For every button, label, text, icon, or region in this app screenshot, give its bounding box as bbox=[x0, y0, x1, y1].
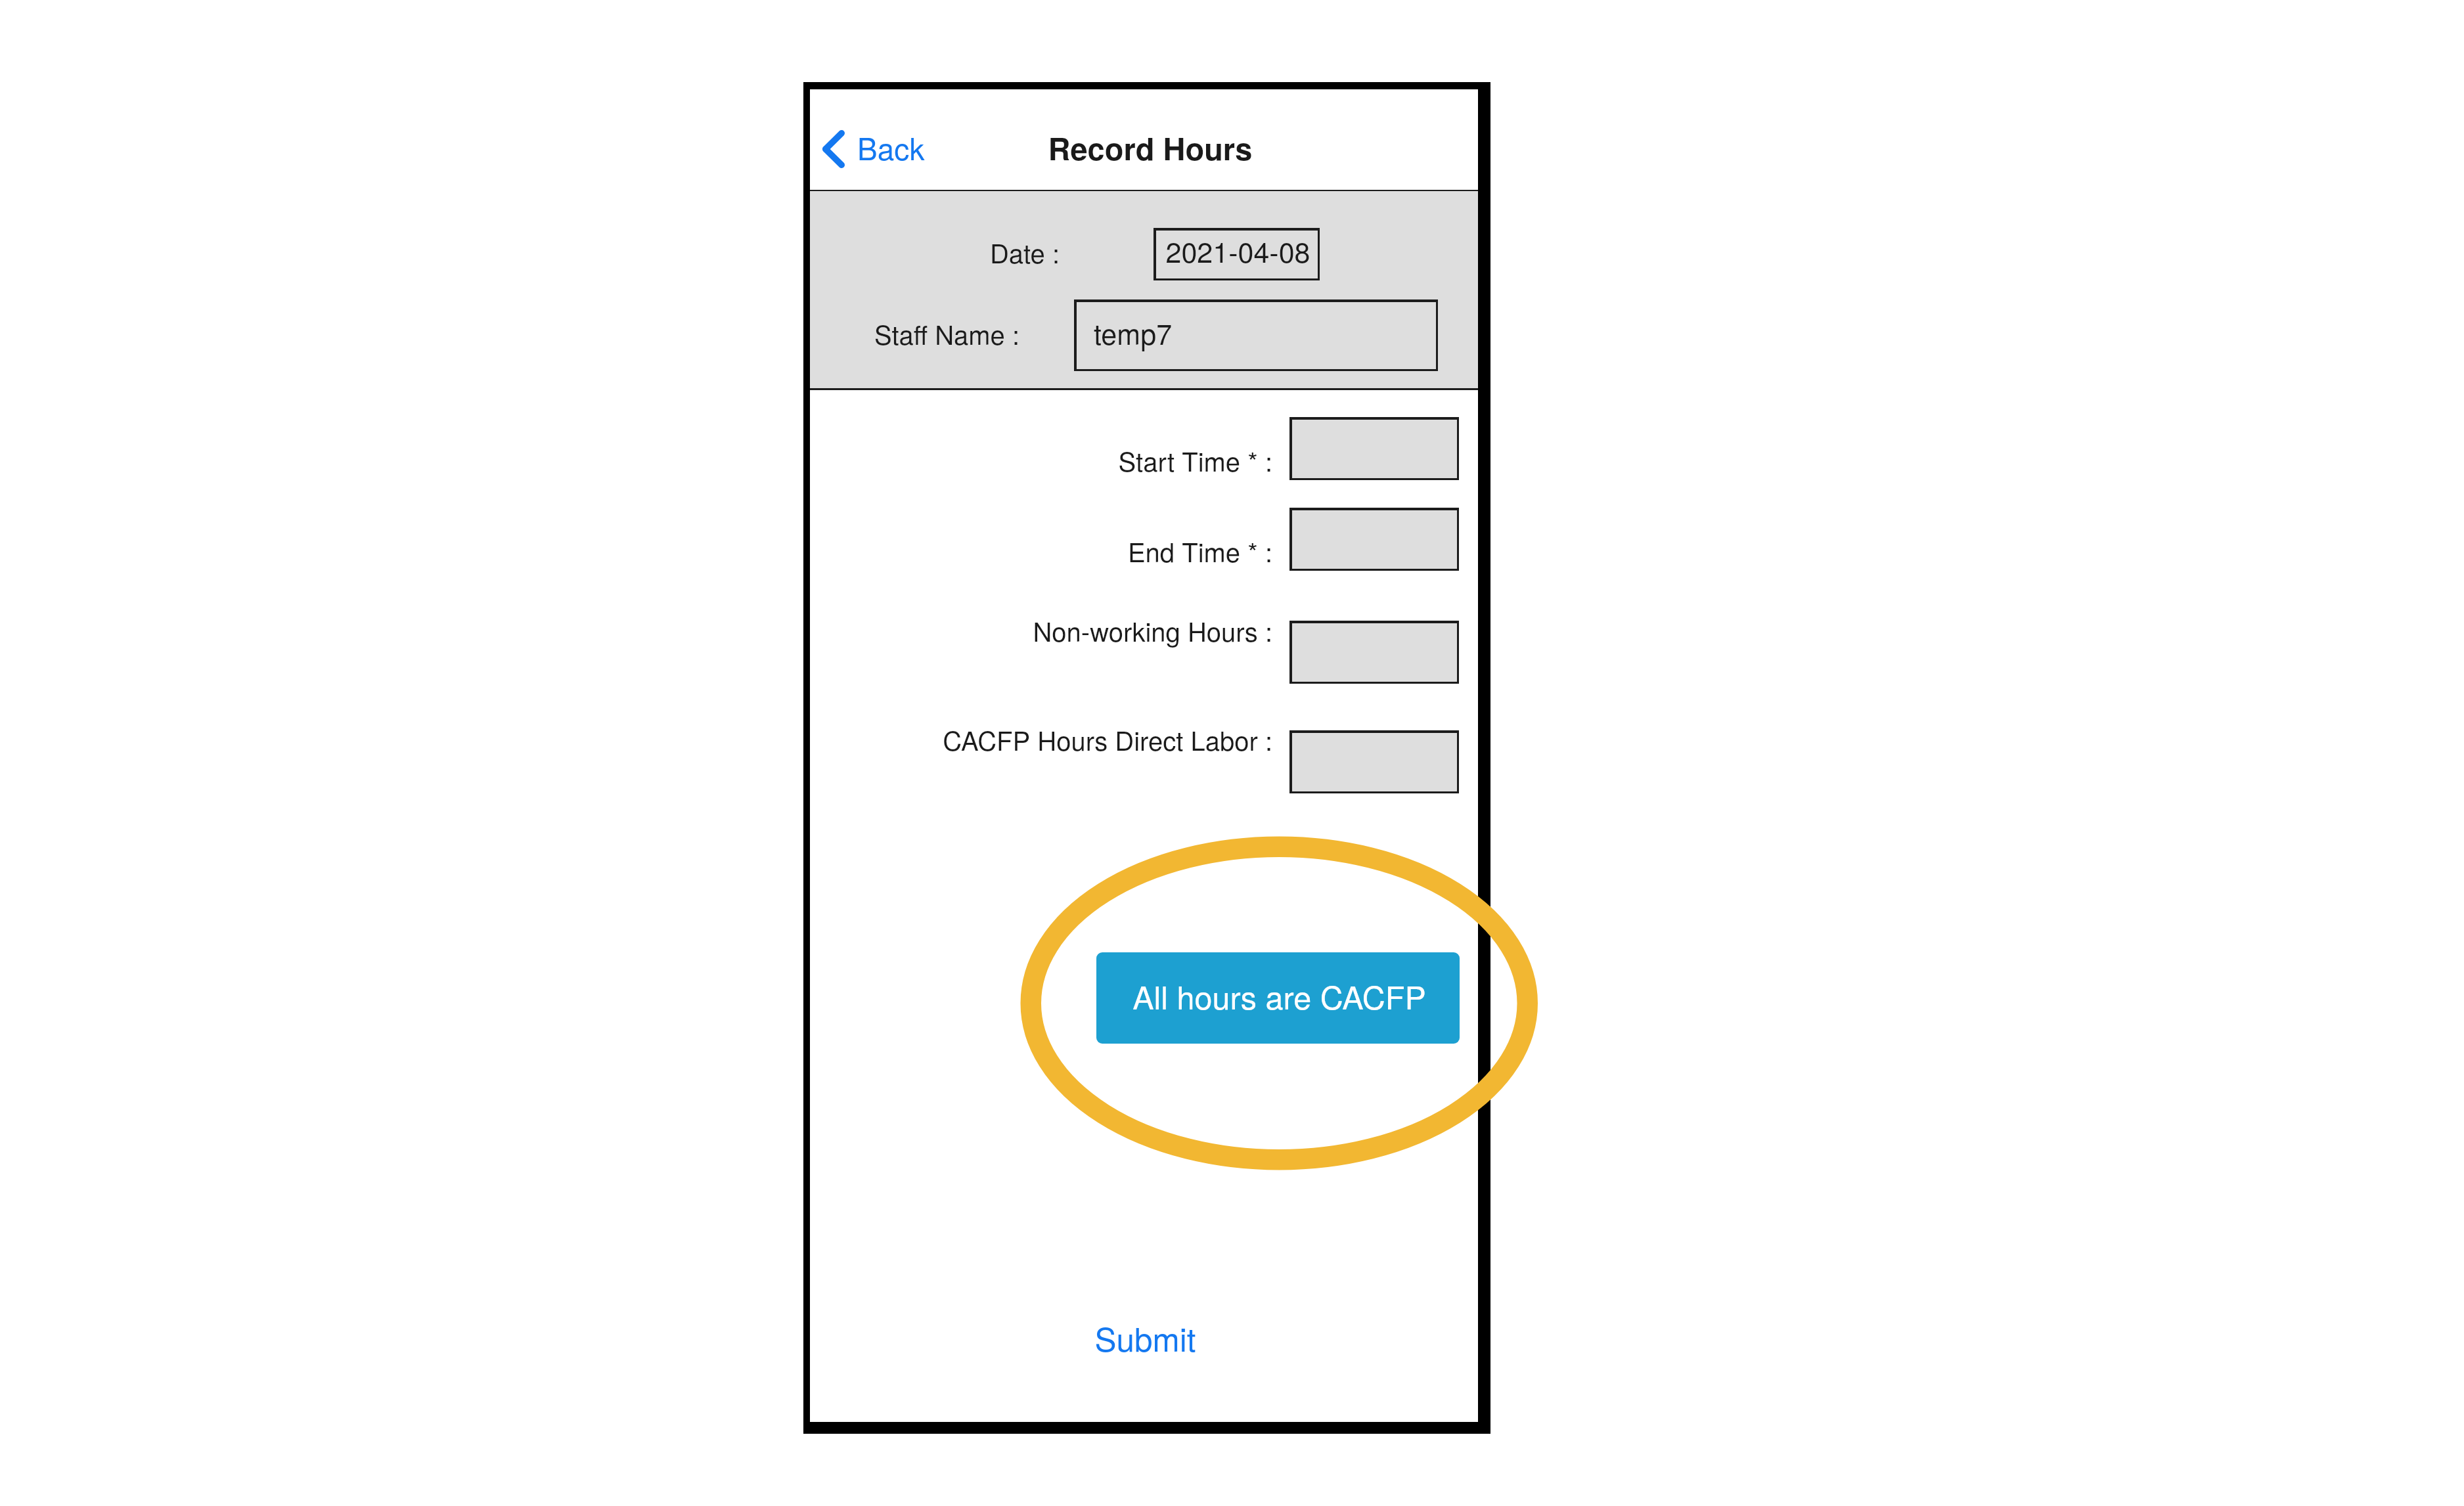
staticText: temp7 bbox=[1094, 313, 1356, 353]
button[interactable]: Submit bbox=[810, 1318, 1478, 1370]
button[interactable]: Start time bbox=[1289, 417, 1459, 480]
button[interactable]: All hours are CACFP bbox=[1096, 952, 1460, 1044]
staticText: Back bbox=[857, 125, 936, 169]
staticText: All hours are CACFP bbox=[1098, 973, 1460, 1018]
staticText: End Time * : bbox=[681, 532, 1272, 569]
staticText: Date : bbox=[468, 233, 1060, 271]
staticText: Submit bbox=[811, 1314, 1479, 1361]
button[interactable]: End time bbox=[1289, 508, 1459, 571]
staticText: CACFP Hours Direct Labor : bbox=[681, 720, 1272, 758]
staticText: Record Hours bbox=[818, 125, 1483, 169]
staticText: 2021-04-08 bbox=[1155, 231, 1321, 271]
button[interactable]: Non-working hours bbox=[1289, 621, 1459, 684]
button[interactable]: Date bbox=[1154, 228, 1320, 280]
staticText: Non-working Hours : bbox=[681, 611, 1272, 649]
button[interactable]: Back bbox=[815, 122, 936, 177]
button[interactable]: CACFP hours direct labor bbox=[1289, 730, 1459, 793]
button[interactable]: Staff name bbox=[1074, 299, 1438, 371]
staticText: Start Time * : bbox=[681, 441, 1272, 479]
staticText: Staff Name : bbox=[428, 315, 1019, 352]
